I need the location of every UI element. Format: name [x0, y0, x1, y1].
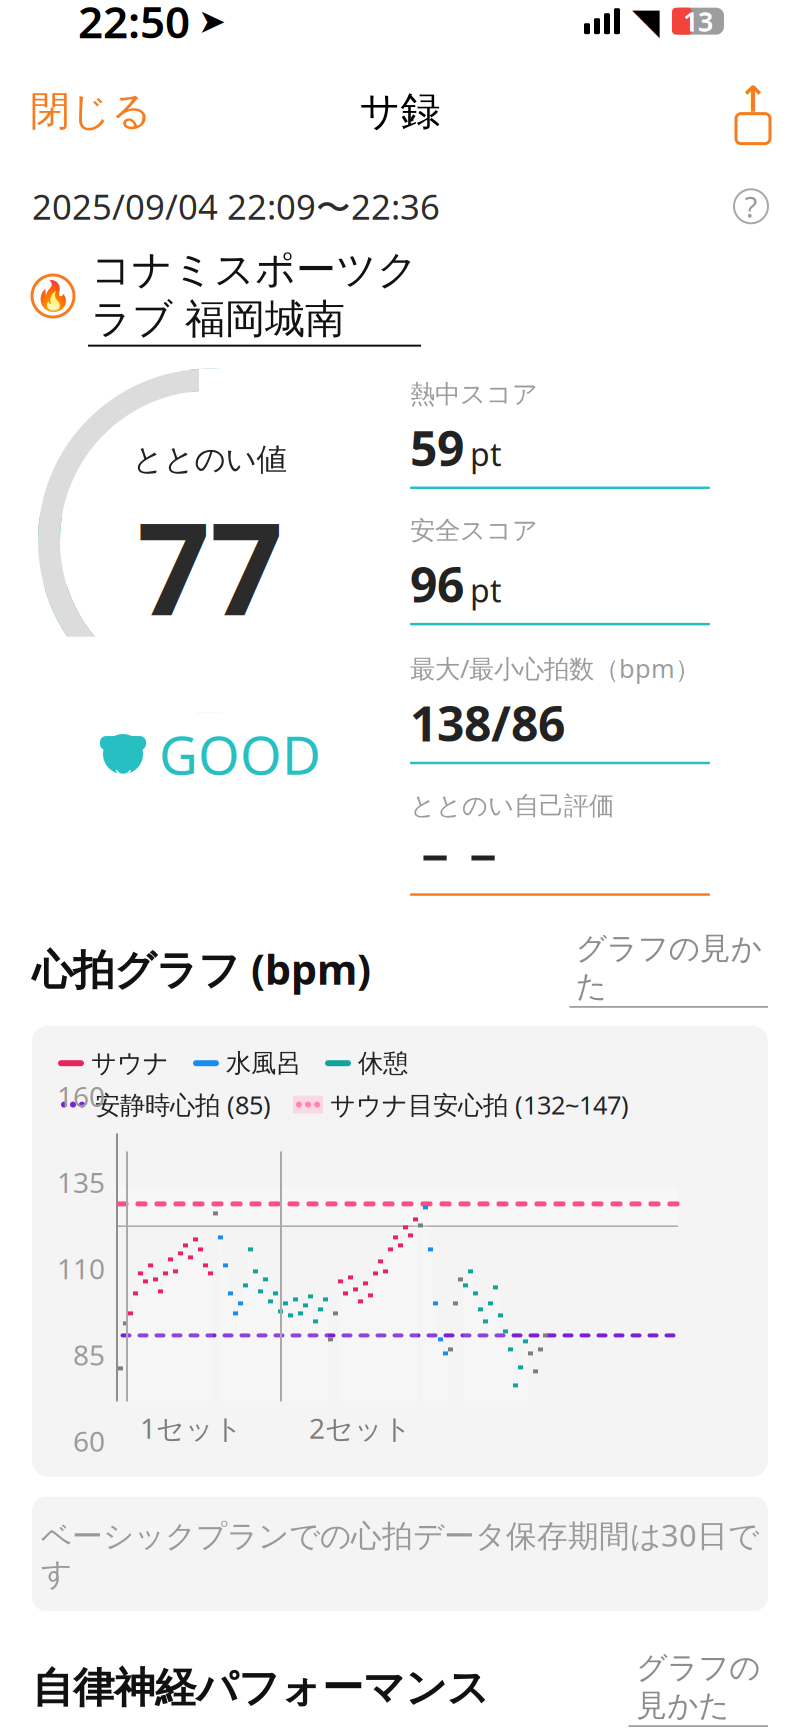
- staticText: 2025/09/04 22:09〜22:36: [32, 183, 440, 229]
- staticText: ↑: [738, 79, 768, 120]
- staticText: 自律神経パフォーマンス: [32, 1662, 489, 1713]
- staticText: 安静時心拍 (85): [95, 1088, 271, 1121]
- staticText: pt: [470, 433, 502, 475]
- staticText: ➤: [198, 2, 226, 40]
- button[interactable]: 🔥: [0, 229, 800, 347]
- staticText: 13: [683, 3, 713, 39]
- button[interactable]: 共有: [706, 73, 800, 150]
- staticText: ととのい自己評価: [410, 790, 614, 821]
- button[interactable]: 閉じる: [0, 75, 182, 148]
- staticText: サ録: [359, 87, 440, 136]
- staticText: 160: [57, 1077, 105, 1115]
- staticText: 138/86: [410, 691, 565, 755]
- staticText: 🔥: [34, 279, 71, 313]
- staticText: 水風呂: [226, 1048, 301, 1079]
- staticText: －－: [410, 827, 506, 886]
- staticText: 110: [57, 1250, 105, 1287]
- staticText: サウナ目安心拍 (132~147): [330, 1088, 629, 1121]
- staticText: 熱中スコア: [410, 379, 538, 410]
- staticText: 77: [137, 480, 283, 650]
- staticText: ?: [744, 187, 757, 226]
- staticText: 閉じる: [30, 87, 152, 136]
- button[interactable]: グラフの見かた: [628, 1649, 768, 1727]
- staticText: 2セット: [309, 1409, 412, 1447]
- staticText: 96: [410, 552, 464, 616]
- staticText: 1セット: [140, 1409, 243, 1447]
- staticText: 22:50: [78, 0, 190, 50]
- staticText: 心拍グラフ (bpm): [32, 941, 371, 996]
- staticText: サウナ: [91, 1048, 169, 1079]
- staticText: pt: [470, 569, 502, 611]
- staticText: 最大/最小心拍数（bpm）: [410, 651, 700, 685]
- staticText: ‿: [115, 741, 131, 777]
- staticText: グラフの見かた: [636, 1649, 760, 1724]
- staticText: 13: [683, 3, 713, 39]
- button[interactable]: ととのい自己評価: [410, 790, 710, 896]
- button[interactable]: グラフの見かた: [569, 930, 768, 1008]
- staticText: コナミスポーツクラブ 福岡城南: [91, 245, 418, 344]
- staticText: ベーシックプランでの心拍データ保存期間は30日です: [41, 1515, 759, 1593]
- staticText: 安全スコア: [410, 515, 538, 546]
- staticText: 85: [73, 1336, 105, 1373]
- staticText: ◥: [632, 1, 660, 42]
- staticText: 60: [73, 1422, 105, 1459]
- staticText: グラフの見かた: [576, 930, 762, 1005]
- staticText: 59: [410, 416, 464, 479]
- staticText: 休憩: [358, 1048, 408, 1079]
- staticText: GOOD: [159, 719, 321, 789]
- button[interactable]: ヘルプ: [734, 189, 768, 223]
- staticText: 135: [57, 1164, 105, 1201]
- staticText: ととのい値: [132, 441, 287, 478]
